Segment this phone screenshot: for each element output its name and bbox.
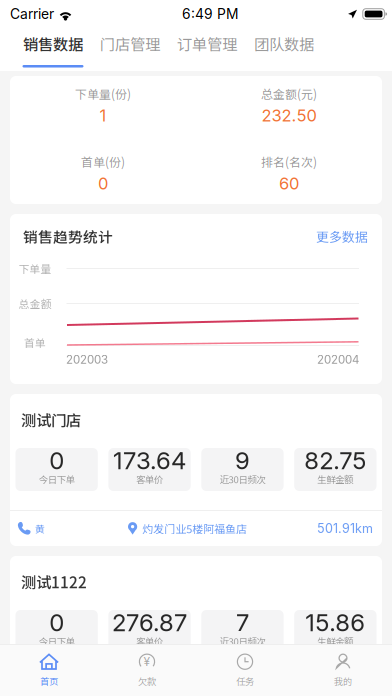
- button[interactable]: 团队数据: [253, 28, 315, 71]
- staticText: 李: [35, 683, 45, 696]
- staticText: 团队数据: [254, 32, 314, 55]
- staticText: 订单管理: [177, 32, 237, 55]
- staticText: 60: [279, 173, 299, 193]
- staticText: 202003: [66, 353, 108, 366]
- staticText: 9: [235, 446, 250, 475]
- button[interactable]: 李: [10, 673, 128, 696]
- staticText: 501.91km: [317, 521, 373, 536]
- staticText: ¥: [143, 654, 150, 669]
- staticText: 总金额(元): [261, 85, 317, 102]
- button[interactable]: 门店管理: [99, 28, 161, 71]
- staticText: 0: [98, 173, 108, 193]
- staticText: 202004: [317, 353, 359, 366]
- staticText: 生鲜金额: [317, 634, 353, 648]
- staticText: 下单量: [18, 261, 51, 276]
- staticText: 测试地址一号楼: [142, 683, 219, 696]
- staticText: 排名(名次): [261, 153, 317, 170]
- staticText: 今日下单: [39, 472, 75, 486]
- staticText: 销售数据: [23, 32, 83, 55]
- staticText: 1: [99, 105, 106, 125]
- staticText: 首单: [24, 335, 46, 350]
- staticText: 下单量(份): [75, 85, 131, 102]
- staticText: Carrier: [10, 6, 54, 22]
- staticText: 82.75: [304, 446, 366, 475]
- button[interactable]: ¥: [98, 644, 196, 696]
- staticText: 总金额: [18, 296, 51, 311]
- button[interactable]: 首页: [0, 644, 98, 696]
- button[interactable]: 测试地址一号楼: [128, 673, 219, 696]
- staticText: 销售趋势统计: [23, 225, 113, 247]
- staticText: 门店管理: [100, 32, 160, 55]
- staticText: 灼发门业5楼阿福鱼店: [142, 521, 247, 536]
- button[interactable]: 销售数据: [22, 28, 84, 71]
- staticText: 15.86: [305, 608, 365, 637]
- button[interactable]: 我的: [294, 644, 392, 696]
- staticText: 7: [236, 608, 249, 637]
- staticText: 客单价: [136, 634, 163, 648]
- staticText: 232.50: [261, 105, 316, 125]
- button[interactable]: 灼发门业5楼阿福鱼店: [128, 511, 247, 546]
- staticText: 客单价: [136, 472, 163, 486]
- staticText: 更多数据: [316, 227, 368, 245]
- staticText: 首页: [40, 674, 58, 687]
- button[interactable]: 黄: [10, 511, 128, 546]
- button[interactable]: 501.91km: [317, 511, 382, 546]
- staticText: 测试门店: [21, 408, 81, 431]
- button[interactable]: 任务: [196, 644, 294, 696]
- staticText: 0: [49, 446, 64, 475]
- staticText: 我的: [334, 674, 352, 687]
- staticText: 欠款: [138, 674, 156, 687]
- staticText: 任务: [236, 674, 254, 687]
- staticText: 173.64: [113, 446, 186, 475]
- staticText: 近30日频次: [219, 634, 265, 648]
- button[interactable]: 订单管理: [176, 28, 238, 71]
- staticText: 首单(份): [81, 153, 125, 170]
- button[interactable]: 更多数据: [316, 227, 368, 245]
- staticText: 黄: [35, 521, 45, 536]
- staticText: 6:49 PM: [182, 6, 239, 22]
- staticText: 近30日频次: [219, 472, 265, 486]
- staticText: 生鲜金额: [317, 472, 353, 486]
- staticText: 测试1122: [21, 570, 87, 593]
- staticText: 276.87: [112, 608, 187, 637]
- button[interactable]: 320.00km: [312, 673, 382, 696]
- staticText: 320.00km: [312, 683, 373, 696]
- staticText: 今日下单: [39, 634, 75, 648]
- staticText: 0: [49, 608, 64, 637]
